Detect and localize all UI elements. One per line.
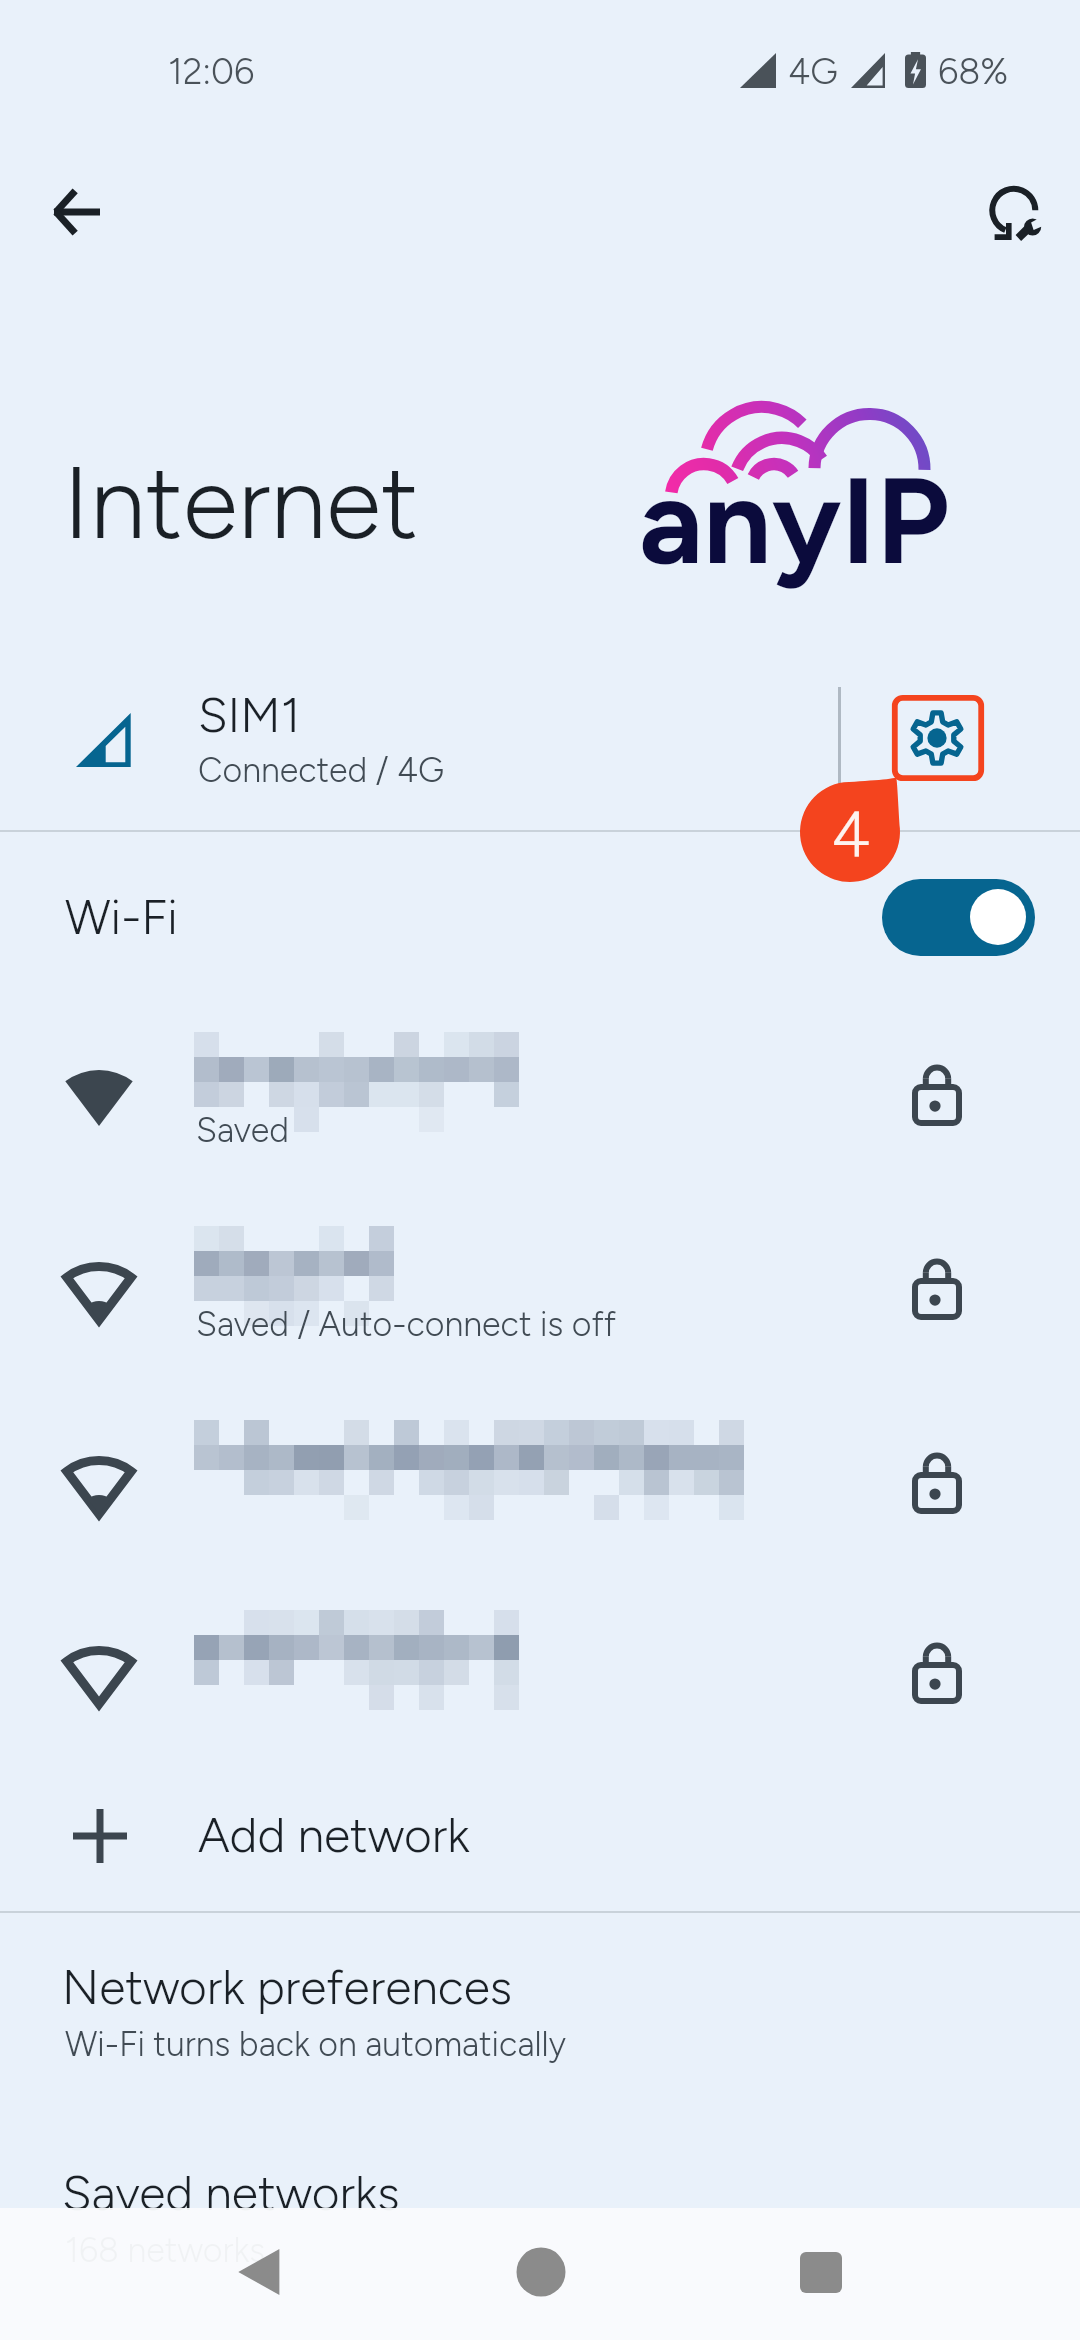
- button[interactable]: [0, 1406, 1080, 1596]
- button[interactable]: Recent apps: [781, 2230, 861, 2310]
- button[interactable]: [0, 1212, 1080, 1402]
- button[interactable]: Wi-Fi on: [882, 879, 1035, 956]
- button[interactable]: [0, 1762, 1080, 1910]
- staticText: Add network: [198, 1806, 470, 1864]
- button[interactable]: SIM settings: [889, 692, 987, 790]
- staticText: Saved: [196, 1110, 289, 1151]
- button[interactable]: Home: [501, 2230, 581, 2310]
- button[interactable]: Fix connectivity: [954, 158, 1058, 262]
- staticText: Saved / Auto-connect is off: [196, 1304, 616, 1345]
- staticText: Connected / 4G: [198, 750, 445, 791]
- button[interactable]: [0, 1596, 1080, 1786]
- button[interactable]: [0, 1913, 1080, 2113]
- staticText: Saved networks: [62, 2164, 400, 2222]
- staticText: 168 networks: [65, 2230, 266, 2271]
- button[interactable]: [0, 652, 1080, 830]
- button[interactable]: Back: [33, 168, 121, 256]
- button[interactable]: [0, 1018, 1080, 1208]
- staticText: 4: [831, 796, 871, 873]
- staticText: 4G: [788, 50, 838, 93]
- staticText: 68%: [938, 50, 1009, 93]
- staticText: Network preferences: [62, 1958, 513, 2016]
- button[interactable]: [0, 832, 1080, 1008]
- staticText: SIM1: [198, 686, 301, 744]
- button[interactable]: [0, 2140, 1080, 2300]
- staticText: 12:06: [168, 50, 255, 93]
- staticText: Internet: [63, 442, 419, 563]
- staticText: Wi-Fi turns back on automatically: [65, 2024, 566, 2065]
- staticText: Wi-Fi: [65, 888, 178, 946]
- button[interactable]: Back: [219, 2230, 299, 2310]
